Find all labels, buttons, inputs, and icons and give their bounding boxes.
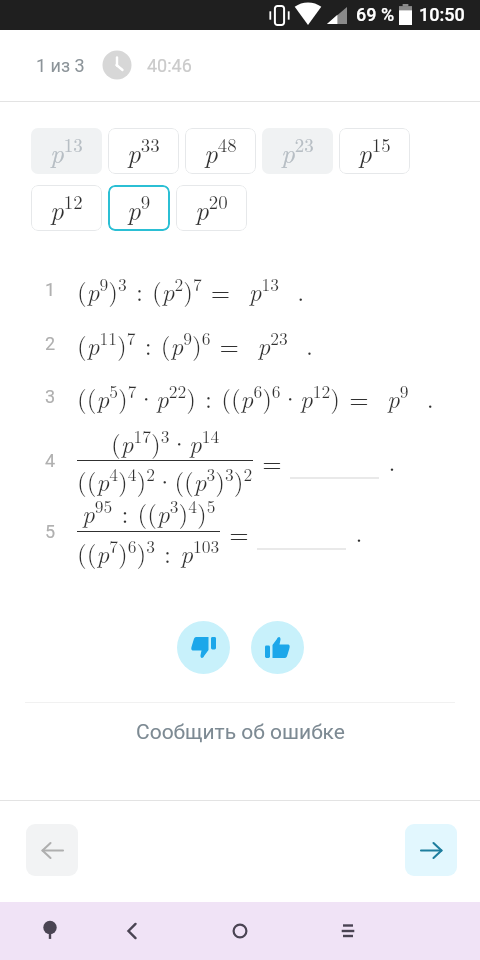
button[interactable]: p20: [176, 185, 247, 231]
staticText: 5: [45, 521, 56, 542]
staticText: 69 %: [356, 4, 395, 25]
button[interactable]: p48: [185, 128, 256, 174]
staticText: (p17)3·p14: [111, 423, 220, 460]
staticText: .: [354, 514, 363, 549]
staticText: 40:46: [147, 55, 192, 76]
staticText: 2: [45, 333, 56, 354]
button[interactable]: p13: [31, 128, 102, 174]
staticText: ((p4)4)2·((p3)3)2: [77, 461, 253, 498]
button[interactable]: Next: [405, 824, 457, 876]
button[interactable]: p9: [108, 185, 170, 231]
button[interactable]: p23: [262, 128, 333, 174]
button[interactable]: Assistant: [21, 902, 79, 960]
button[interactable]: p33: [108, 128, 179, 174]
staticText: ((p5)7·p22) : ((p6)6·p12) = p9 .: [77, 377, 434, 416]
staticText: =: [220, 512, 249, 551]
staticText: 3: [45, 386, 56, 407]
staticText: 1 из 3: [36, 55, 85, 76]
button[interactable]: Сообщить об ошибке: [0, 720, 480, 745]
staticText: (p11)7 : (p9)6 = p23 .: [77, 324, 313, 363]
button[interactable]: p15: [339, 128, 410, 174]
staticText: p33: [127, 131, 160, 171]
staticText: p13: [50, 131, 83, 171]
staticText: 10:50: [419, 4, 465, 25]
button[interactable]: Like: [251, 621, 304, 674]
button[interactable]: Home: [211, 902, 269, 960]
staticText: =: [253, 441, 282, 480]
staticText: Сообщить об ошибке: [136, 720, 345, 745]
staticText: 4: [45, 450, 56, 471]
staticText: p23: [281, 131, 314, 171]
button[interactable]: Recent apps: [319, 902, 377, 960]
staticText: 1: [45, 279, 56, 300]
button[interactable]: Previous: [26, 824, 78, 876]
button[interactable]: Back: [103, 902, 161, 960]
staticText: p15: [358, 131, 391, 171]
staticText: p20: [195, 188, 228, 228]
staticText: (p9)3 : (p2)7 = p13 .: [77, 270, 305, 309]
staticText: ((p7)6)3 : p103: [77, 532, 220, 571]
staticText: p12: [50, 188, 83, 228]
staticText: p9: [127, 188, 151, 228]
button[interactable]: Dislike: [177, 621, 230, 674]
button[interactable]: p12: [31, 185, 102, 231]
staticText: p95 : ((p3)4)5: [82, 492, 216, 531]
staticText: .: [387, 443, 396, 478]
staticText: p48: [204, 131, 237, 171]
